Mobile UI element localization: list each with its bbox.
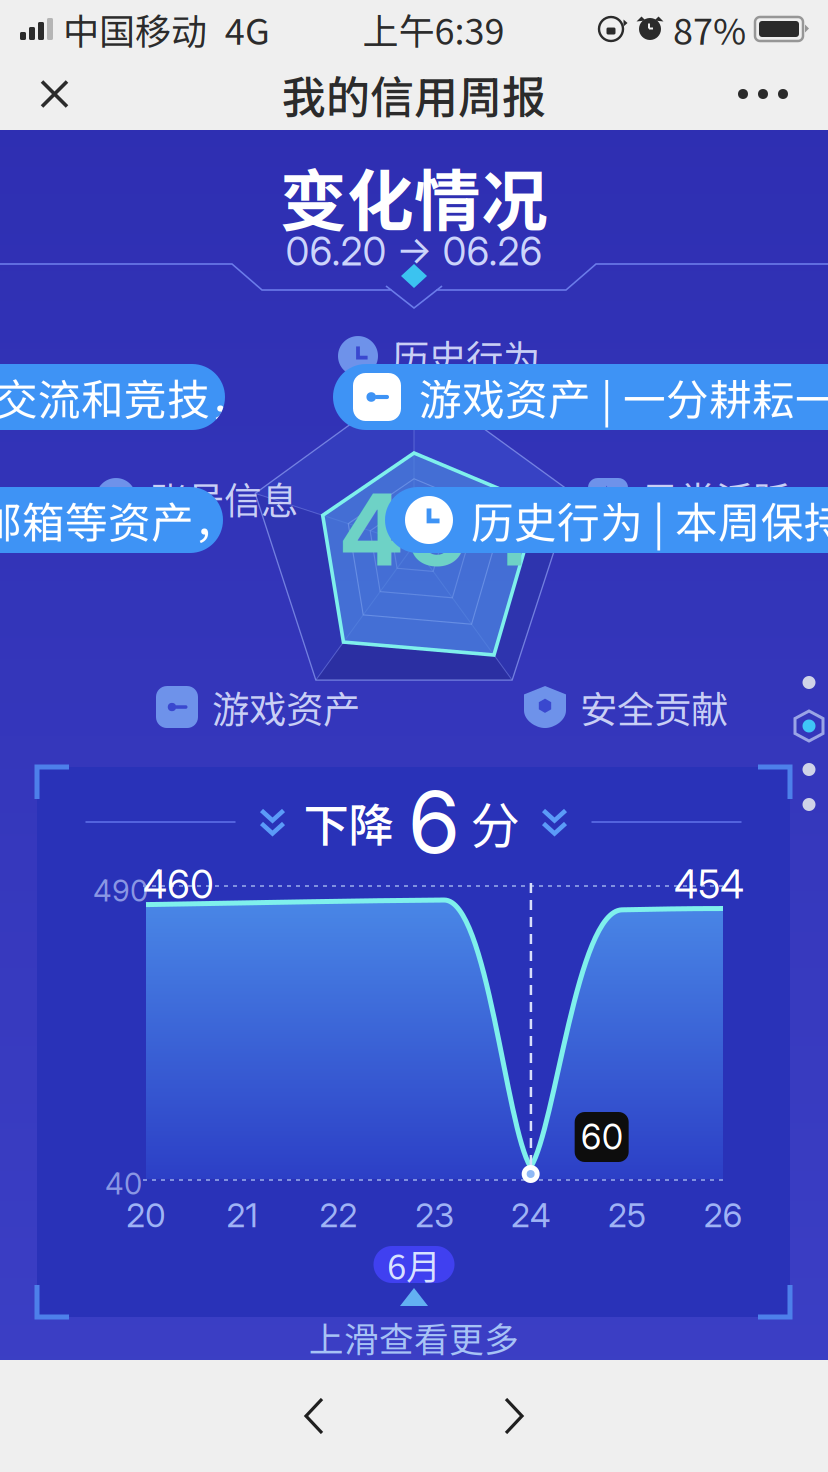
staticText: 25 [608,1195,646,1235]
staticText: 20 [126,1195,166,1235]
staticText: 我的信用周报 [282,62,546,126]
staticText: 中国移动 [63,3,207,55]
staticText: 历史行为 | 本周保持文明交流和竞技 [471,489,828,551]
button[interactable]: 前进 [464,1371,564,1461]
button[interactable]: 关闭 [12,61,97,126]
staticText: 安全贡献 [580,680,728,734]
staticText: 24 [511,1195,551,1235]
staticText: 游戏资产 | 一分耕耘一分收获，本周 [419,366,828,428]
staticText: 490 [93,873,148,908]
staticText: 454 [338,470,535,589]
staticText: 22 [319,1195,357,1235]
staticText: 账号信息 [150,471,298,525]
staticText: 变化情况 [280,148,548,244]
staticText: 6 [407,770,460,874]
staticText: 23 [415,1195,454,1235]
staticText: 安全贡献 | 本周保持文明交流和竞技，信用加分哦 [0,366,468,428]
staticText: 游戏资产 [212,680,360,734]
staticText: 26 [703,1195,742,1235]
staticText: 异常活跃 [642,471,790,525]
staticText: 60 [581,1116,623,1158]
staticText: 上滑查看更多 [309,1312,519,1362]
staticText: 460 [143,861,214,908]
staticText: 06.20 → 06.26 [285,228,542,275]
staticText: 21 [226,1195,258,1235]
staticText: 上午6:39 [362,3,504,55]
staticText: 下降 [303,789,393,855]
staticText: 分 [470,786,519,858]
staticText: 454 [674,861,744,908]
staticText: 6月 [387,1239,441,1290]
staticText: 4G [225,3,270,55]
staticText: 账号信息 | 绑定手机与邮箱等资产，信用加分哦 [0,489,452,551]
button[interactable]: 后退 [264,1371,364,1461]
staticText: 87% [673,3,746,55]
button[interactable]: 更多 [710,67,816,121]
staticText: 40 [105,1166,142,1201]
staticText: 历史行为 [392,329,540,383]
